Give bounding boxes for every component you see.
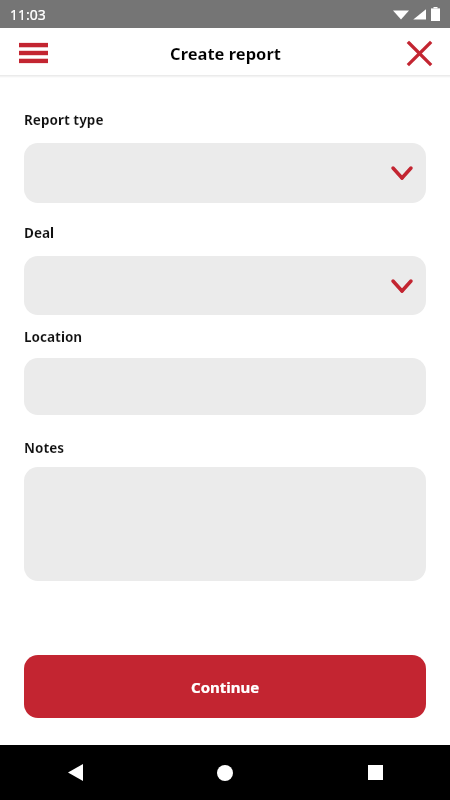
staticText: Location: [24, 328, 83, 346]
button[interactable]: Recent apps: [300, 745, 450, 800]
button[interactable]: Back: [0, 745, 150, 800]
staticText: Deal: [24, 224, 55, 242]
staticText: Notes: [24, 439, 65, 457]
button[interactable]: Home: [150, 745, 300, 800]
staticText: 11:03: [10, 5, 46, 24]
button[interactable]: Close: [397, 31, 441, 75]
button[interactable]: Menu: [11, 31, 55, 75]
button[interactable]: Select option: [24, 143, 426, 203]
staticText: Create report: [170, 42, 281, 64]
button[interactable]: Continue: [24, 655, 426, 718]
button[interactable]: Select option: [24, 256, 426, 315]
staticText: Report type: [24, 111, 104, 129]
staticText: Continue: [191, 677, 260, 697]
